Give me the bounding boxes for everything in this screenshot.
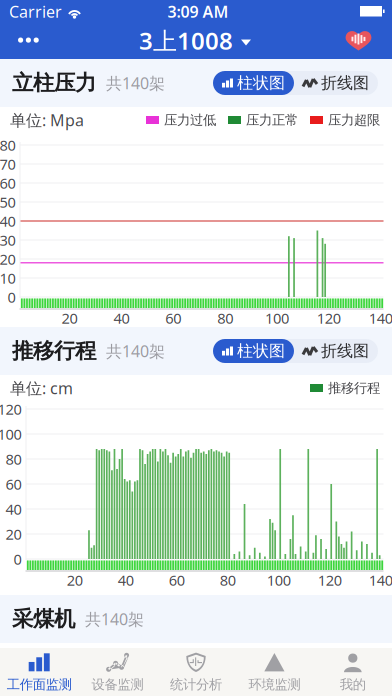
staticText: 20 [67,570,83,590]
staticText: 立柱压力 [12,70,96,96]
staticText: 20 [5,524,21,544]
button[interactable]: 折线图 [294,71,378,95]
staticText: 120 [0,399,21,419]
staticText: 60 [5,474,21,494]
staticText: 140 [369,570,392,590]
staticText: 10 [0,268,15,288]
staticText: 柱状图 [237,341,285,361]
staticText: Carrier [9,1,62,22]
button[interactable]: 我的 [314,648,392,696]
staticText: 0 [7,287,15,307]
staticText: 共140架 [75,608,144,630]
staticText: 统计分析 [170,676,222,693]
staticText: 工作面监测 [7,676,72,693]
button[interactable]: More [0,22,62,58]
staticText: 压力超限 [328,112,380,128]
staticText: 100 [265,308,289,328]
staticText: 压力过低 [164,112,216,128]
staticText: 100 [0,424,21,444]
staticText: 100 [267,570,291,590]
staticText: 3:09 AM [167,1,228,22]
staticText: 70 [0,154,15,174]
staticText: 60 [0,173,15,193]
staticText: 我的 [340,676,366,693]
button[interactable]: 设备监测 [78,648,157,696]
staticText: 3上1008 [139,25,233,56]
staticText: 0 [13,549,21,569]
staticText: 50 [0,192,15,212]
staticText: 40 [118,570,134,590]
staticText: 80 [5,449,21,469]
staticText: 120 [318,570,342,590]
staticText: 推移行程 [12,338,96,364]
button[interactable]: 3上1008 [139,22,251,58]
staticText: 推移行程 [328,380,380,396]
staticText: 20 [62,308,78,328]
button[interactable]: 工作面监测 [0,648,78,696]
staticText: 压力正常 [246,112,298,128]
staticText: 共140架 [96,340,165,362]
staticText: 单位: Mpa [10,109,84,131]
button[interactable]: 统计分析 [157,648,235,696]
staticText: 80 [217,308,233,328]
staticText: 40 [113,308,129,328]
staticText: 30 [0,230,15,250]
staticText: 设备监测 [92,676,144,693]
staticText: 140 [369,308,392,328]
staticText: 60 [165,308,181,328]
staticText: 环境监测 [248,676,300,693]
button[interactable]: 环境监测 [235,648,314,696]
staticText: 采煤机 [12,606,75,632]
staticText: 80 [0,135,15,155]
button[interactable]: 折线图 [294,339,378,363]
staticText: 40 [0,211,15,231]
staticText: 折线图 [321,73,369,93]
button[interactable]: Alerts [328,22,392,58]
staticText: 单位: cm [10,377,73,399]
staticText: 柱状图 [237,73,285,93]
staticText: 60 [169,570,185,590]
button[interactable]: 柱状图 [213,339,294,363]
staticText: 折线图 [321,341,369,361]
staticText: 120 [317,308,341,328]
staticText: 40 [5,499,21,519]
staticText: 共140架 [96,72,165,94]
staticText: 20 [0,249,15,269]
staticText: 80 [220,570,236,590]
button[interactable]: 柱状图 [213,71,294,95]
